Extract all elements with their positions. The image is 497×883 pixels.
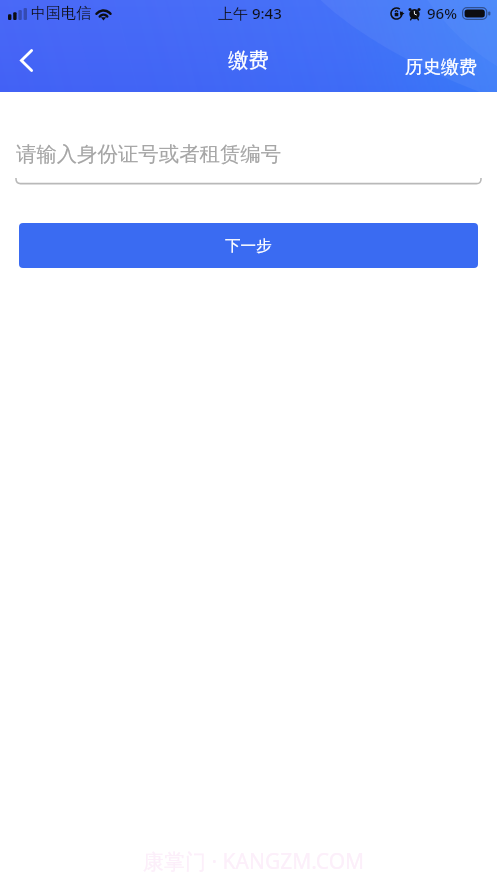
staticText: 上午 9:43 [218, 3, 282, 23]
staticText: 请输入身份证号或者租赁编号 [16, 141, 282, 167]
staticText: 96% [427, 3, 457, 23]
staticText: 康掌门 · KANGZM.COM [143, 847, 365, 876]
button[interactable]: 下一步 [19, 223, 478, 268]
staticText: 历史缴费 [405, 56, 477, 79]
staticText: 下一步 [225, 236, 272, 256]
button[interactable]: 历史缴费 [393, 41, 497, 93]
button[interactable]: 请输入身份证号或者租赁编号 [0, 92, 497, 184]
staticText: 缴费 [228, 47, 269, 73]
button[interactable]: Back [0, 34, 54, 86]
staticText: 中国电信 [31, 4, 91, 23]
